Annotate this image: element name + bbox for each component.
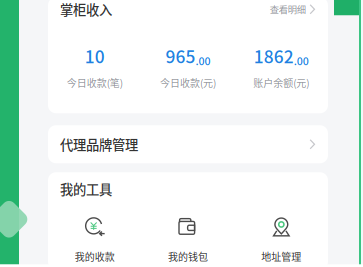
staticText: 我的收款 xyxy=(75,249,115,264)
staticText: 我的工具 xyxy=(60,179,112,198)
staticText: .00 xyxy=(195,53,210,68)
button[interactable]: 代理品牌管理 xyxy=(48,125,328,163)
staticText: 掌柜收入 xyxy=(60,0,112,19)
button[interactable]: 我的钱包 xyxy=(141,214,235,264)
staticText: 我的钱包 xyxy=(168,249,208,264)
button[interactable]: 我的收款 xyxy=(48,214,141,264)
staticText: 今日收款(笔) xyxy=(67,75,123,90)
staticText: 账户余额(元) xyxy=(253,75,309,90)
button[interactable]: 查看明细 xyxy=(270,2,316,16)
staticText: 10 xyxy=(85,43,105,68)
staticText: .00 xyxy=(294,53,309,68)
staticText: 地址管理 xyxy=(261,249,301,264)
button[interactable]: 地址管理 xyxy=(235,214,328,264)
staticText: 查看明细 xyxy=(270,2,306,16)
staticText: 今日收款(元) xyxy=(160,75,216,90)
staticText: 代理品牌管理 xyxy=(60,135,138,154)
staticText: 965 xyxy=(165,43,195,68)
staticText: 1862 xyxy=(254,43,294,68)
